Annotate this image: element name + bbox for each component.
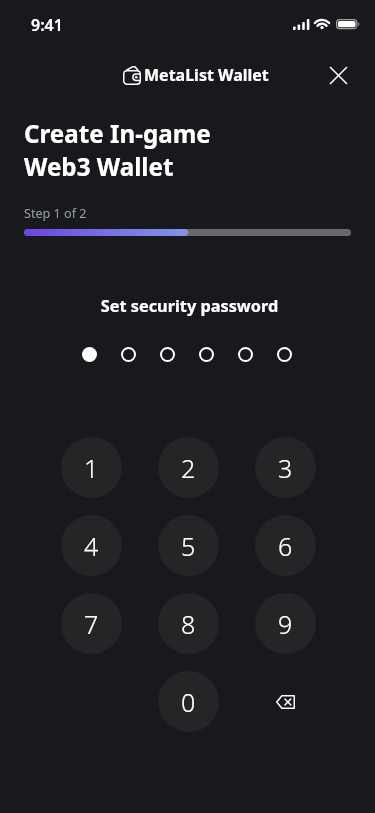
staticText: 9 [278, 607, 293, 641]
button[interactable]: 0 [158, 671, 219, 732]
staticText: 1 [84, 451, 99, 485]
staticText: MetaList Wallet [144, 64, 269, 86]
button[interactable]: Backspace [255, 671, 316, 732]
button[interactable]: Close [321, 58, 355, 92]
button[interactable]: 7 [61, 593, 122, 654]
staticText: Create In-game Web3 Wallet [24, 117, 211, 183]
button[interactable]: 2 [158, 437, 219, 498]
staticText: 7 [84, 607, 99, 641]
button[interactable]: 1 [61, 437, 122, 498]
staticText: 3 [278, 451, 293, 485]
staticText: Step 1 of 2 [24, 205, 87, 222]
staticText: 5 [181, 529, 196, 563]
staticText: 8 [181, 607, 196, 641]
staticText: 9:41 [31, 14, 63, 36]
staticText: 0 [181, 685, 196, 719]
staticText: 2 [181, 451, 196, 485]
button[interactable]: 8 [158, 593, 219, 654]
staticText: 4 [84, 529, 99, 563]
button[interactable]: 4 [61, 515, 122, 576]
button[interactable]: 3 [255, 437, 316, 498]
button[interactable]: 5 [158, 515, 219, 576]
button[interactable]: 6 [255, 515, 316, 576]
button[interactable]: 9 [255, 593, 316, 654]
staticText: 6 [278, 529, 293, 563]
staticText: Set security password [2, 295, 375, 317]
